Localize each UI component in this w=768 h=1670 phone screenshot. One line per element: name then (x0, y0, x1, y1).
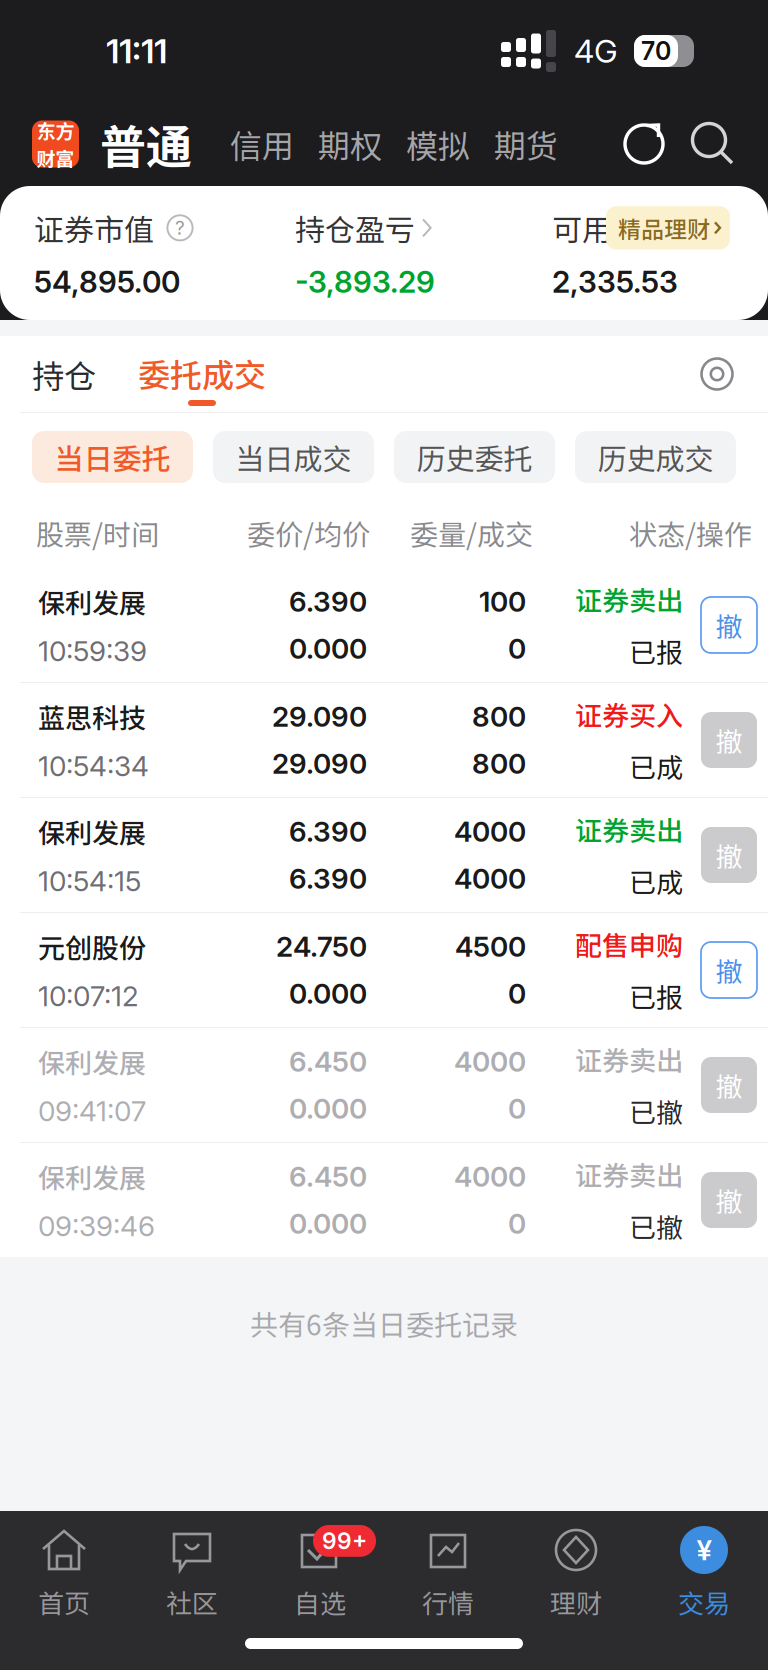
button[interactable]: 持仓 (32, 336, 96, 412)
staticText: 70 (641, 36, 671, 66)
button[interactable]: 历史委托 (394, 431, 555, 483)
staticText: 4000 (454, 1160, 526, 1193)
staticText: 委托成交 (138, 350, 266, 396)
staticText: 6.390 (289, 815, 367, 848)
staticText: 首页 (38, 1583, 90, 1621)
button[interactable]: 期货 (482, 116, 570, 172)
staticText: 已成 (629, 746, 683, 786)
staticText: 29.090 (272, 700, 367, 733)
staticText: -3,893.29 (295, 264, 435, 300)
staticText: 已报 (629, 976, 683, 1016)
button[interactable]: 撤 (701, 1172, 757, 1228)
button[interactable]: 首页 (0, 1511, 128, 1627)
staticText: 4000 (454, 815, 526, 848)
staticText: 0 (508, 1091, 526, 1125)
staticText: 29.090 (272, 746, 367, 780)
staticText: 撤 (715, 720, 742, 760)
staticText: 共有6条当日委托记录 (250, 1303, 518, 1343)
staticText: 普通 (100, 111, 192, 177)
staticText: 配售申购 (575, 924, 683, 963)
staticText: 2,335.53 (552, 264, 678, 300)
staticText: 历史成交 (597, 436, 713, 478)
staticText: 证券卖出 (575, 1039, 683, 1078)
button[interactable]: 撤 (701, 942, 757, 998)
staticText: 证券卖出 (575, 579, 683, 618)
staticText: 已撤 (629, 1091, 683, 1131)
staticText: ? (175, 216, 185, 239)
staticText: 0 (508, 976, 526, 1010)
staticText: 10:59:39 (38, 634, 147, 668)
button[interactable]: 历史成交 (575, 431, 736, 483)
button[interactable]: 行情 (384, 1511, 512, 1627)
button[interactable]: 撤 (701, 827, 757, 883)
staticText: 可用 (552, 206, 612, 249)
staticText: 09:41:07 (38, 1094, 146, 1128)
staticText: ¥ (696, 1533, 711, 1567)
button[interactable]: 当日成交 (213, 431, 374, 483)
staticText: 09:39:46 (38, 1209, 155, 1243)
staticText: 证券市值 (34, 206, 154, 249)
button[interactable]: 当日委托 (32, 431, 193, 483)
staticText: 委价/均价 (247, 513, 370, 553)
staticText: 证券买入 (575, 694, 683, 733)
button[interactable]: 撤 (701, 1057, 757, 1113)
staticText: 历史委托 (416, 436, 532, 478)
staticText: 撤 (715, 950, 742, 990)
staticText: 撤 (715, 835, 742, 875)
staticText: 800 (472, 700, 526, 733)
staticText: 保利发展 (38, 1157, 146, 1196)
staticText: 持仓盈亏 (295, 206, 415, 249)
button[interactable]: 蓝思科技 (0, 683, 768, 797)
staticText: 当日成交 (235, 436, 351, 478)
button[interactable]: 模拟 (394, 116, 482, 172)
button[interactable]: 精品理财 (606, 206, 730, 249)
staticText: 委量/成交 (410, 513, 533, 553)
staticText: 财富 (36, 144, 74, 171)
staticText: 元创股份 (38, 927, 146, 966)
button[interactable]: 99+ (256, 1511, 384, 1627)
button[interactable]: ¥ (640, 1511, 768, 1627)
staticText: 撤 (715, 1180, 742, 1220)
staticText: 自选 (294, 1583, 346, 1621)
button[interactable]: Search (670, 119, 738, 169)
staticText: 信用 (230, 121, 294, 167)
button[interactable]: 保利发展 (0, 1028, 768, 1142)
staticText: 保利发展 (38, 582, 146, 621)
staticText: 行情 (422, 1583, 474, 1621)
button[interactable]: 理财 (512, 1511, 640, 1627)
button[interactable]: Refresh (620, 119, 670, 169)
button[interactable]: 撤 (701, 712, 757, 768)
button[interactable]: 委托成交 (96, 336, 266, 412)
staticText: 6.450 (289, 1045, 367, 1078)
staticText: 6.390 (289, 861, 367, 895)
staticText: 99+ (322, 1527, 367, 1555)
staticText: 4500 (455, 930, 526, 963)
staticText: 社区 (166, 1583, 218, 1621)
staticText: 已撤 (629, 1206, 683, 1246)
staticText: 0.000 (289, 976, 367, 1010)
button[interactable]: 信用 (218, 116, 306, 172)
staticText: 持仓 (32, 351, 96, 397)
staticText: 0 (508, 631, 526, 665)
staticText: 撤 (715, 1065, 742, 1105)
button[interactable]: 期权 (306, 116, 394, 172)
staticText: 6.390 (289, 585, 367, 618)
staticText: 11:11 (106, 30, 167, 71)
staticText: 4G (574, 32, 618, 70)
staticText: 当日委托 (54, 436, 170, 478)
staticText: 已报 (629, 631, 683, 671)
staticText: 期货 (494, 121, 558, 167)
button[interactable]: 保利发展 (0, 1143, 768, 1257)
button[interactable]: 社区 (128, 1511, 256, 1627)
staticText: 6.450 (289, 1160, 367, 1193)
button[interactable]: 元创股份 (0, 913, 768, 1027)
staticText: 交易 (678, 1583, 730, 1621)
staticText: 10:54:34 (38, 749, 149, 783)
button[interactable]: Settings (696, 353, 738, 395)
button[interactable]: 撤 (701, 597, 757, 653)
button[interactable]: 保利发展 (0, 798, 768, 912)
staticText: 4000 (454, 1045, 526, 1078)
button[interactable]: 保利发展 (0, 568, 768, 682)
staticText: 理财 (550, 1583, 602, 1621)
staticText: 0.000 (289, 1206, 367, 1240)
